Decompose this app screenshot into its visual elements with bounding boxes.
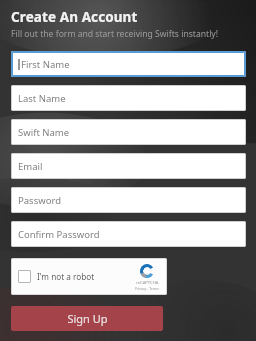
staticText: Confirm Password [18,228,100,241]
button[interactable]: Sign Up [11,306,163,331]
button[interactable]: Last Name [11,85,246,111]
staticText: Fill out the form and start receiving Sw… [11,28,219,40]
staticText: Last Name [18,92,66,105]
staticText: Privacy - Terms [135,286,159,291]
button[interactable]: I'm not a robot checkbox [11,258,167,295]
button[interactable]: Confirm Password [11,221,246,247]
button[interactable]: Swift Name [11,119,246,145]
button[interactable]: Password [11,187,246,213]
button[interactable]: I'm not a robot checkbox [18,270,31,283]
staticText: Password [18,194,61,207]
staticText: reCAPTCHA [136,280,159,286]
staticText: Swift Name [18,126,70,139]
staticText: First Name [21,58,70,71]
staticText: I'm not a robot [37,271,95,282]
staticText: Create An Account [11,8,138,26]
button[interactable]: First Name [11,51,246,77]
button[interactable]: Email [11,153,246,179]
other: reCAPTCHA logo [139,263,155,279]
staticText: Email [18,160,43,173]
staticText: Sign Up [67,311,108,326]
